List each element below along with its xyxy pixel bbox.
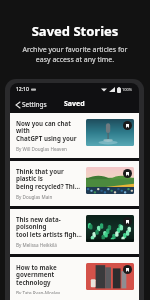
button[interactable]: This new data-poisoning tool lets artist…: [10, 209, 139, 254]
staticText: By Tate Ryan-Mosley: [16, 290, 60, 294]
staticText: 12:10: [16, 86, 29, 93]
button[interactable]: Remove bookmark: [123, 121, 132, 130]
staticText: By Douglas Main: [16, 194, 53, 200]
button[interactable]: Think that your plastic is being recycle…: [10, 161, 139, 206]
button[interactable]: Remove bookmark: [123, 169, 132, 178]
button[interactable]: Settings: [10, 97, 53, 112]
button[interactable]: Now you can chat with ChatGPT using your…: [10, 113, 139, 158]
staticText: 100%: [122, 87, 133, 92]
staticText: Now you can chat with ChatGPT using your…: [16, 119, 82, 143]
button[interactable]: How to make government technology better: [10, 257, 139, 300]
staticText: This new data-poisoning tool lets artist…: [16, 215, 82, 239]
staticText: By Will Douglas Heaven: [16, 146, 67, 152]
staticText: Saved: [64, 99, 85, 109]
staticText: By Melissa Heikkilä: [16, 242, 57, 248]
staticText: Settings: [22, 100, 47, 109]
staticText: Archive your favorite articles for easy …: [0, 45, 150, 65]
staticText: Think that your plastic is being recycle…: [16, 167, 82, 191]
button[interactable]: Remove bookmark: [123, 265, 132, 274]
staticText: How to make government technology better: [16, 263, 82, 287]
button[interactable]: Remove bookmark: [123, 217, 132, 226]
staticText: Saved Stories: [0, 22, 150, 40]
